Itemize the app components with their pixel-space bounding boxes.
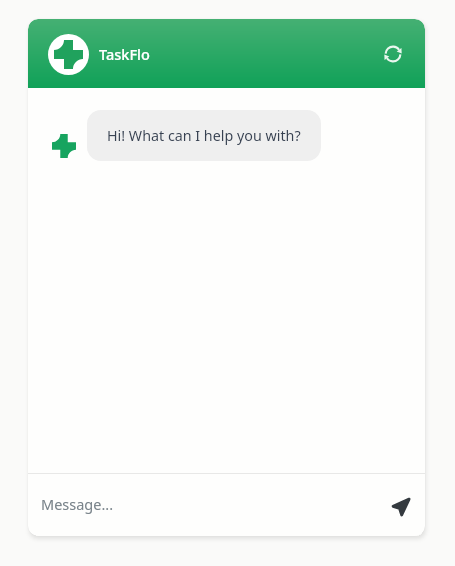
button[interactable]: Refresh — [378, 39, 408, 69]
button[interactable]: Send — [385, 489, 417, 521]
staticText: TaskFlo — [99, 44, 150, 64]
staticText: Hi! What can I help you with? — [107, 126, 301, 145]
button[interactable]: Message... — [28, 474, 385, 536]
staticText: Message... — [41, 494, 114, 514]
